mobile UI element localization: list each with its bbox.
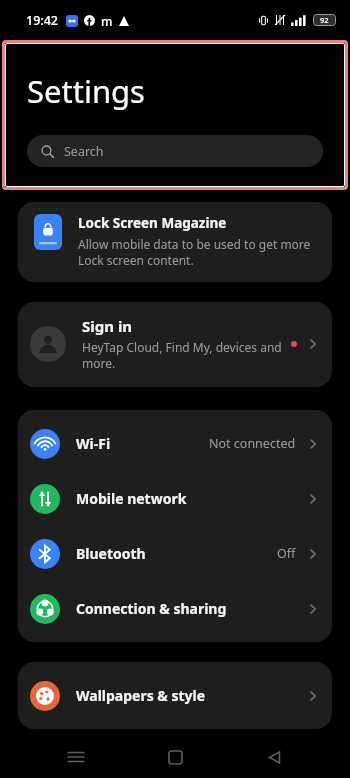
staticText: Mobile network [76, 489, 187, 508]
button[interactable]: Lock Screen Magazine [18, 202, 332, 282]
button[interactable]: Wallpapers & style [18, 668, 332, 723]
button[interactable]: Bluetooth [18, 526, 332, 581]
button[interactable]: Connection & sharing [18, 581, 332, 636]
staticText: m [101, 13, 113, 29]
staticText: Off [277, 545, 296, 562]
staticText: 19:42 [26, 12, 59, 29]
button[interactable]: Mobile network [18, 471, 332, 526]
button[interactable]: Search [27, 135, 323, 167]
staticText: Bluetooth [76, 544, 146, 563]
staticText: HeyTap Cloud, Find My, devices and more. [82, 339, 291, 371]
staticText: Sign in [82, 316, 133, 336]
staticText: 92 [320, 15, 329, 25]
button[interactable]: Back [251, 736, 297, 778]
staticText: Lock Screen Magazine [78, 214, 227, 232]
button[interactable]: Home [152, 736, 198, 778]
button[interactable]: Recent apps [53, 736, 99, 778]
staticText: Allow mobile data to be used to get more… [78, 236, 318, 268]
staticText: Wallpapers & style [76, 686, 206, 705]
staticText: Connection & sharing [76, 599, 227, 618]
button[interactable]: Sign in [18, 302, 332, 387]
staticText: Wi-Fi [76, 434, 111, 453]
button[interactable]: Wi-Fi [18, 416, 332, 471]
staticText: Not connected [209, 435, 296, 452]
staticText: Search [64, 143, 104, 160]
staticText: Settings [27, 70, 145, 112]
